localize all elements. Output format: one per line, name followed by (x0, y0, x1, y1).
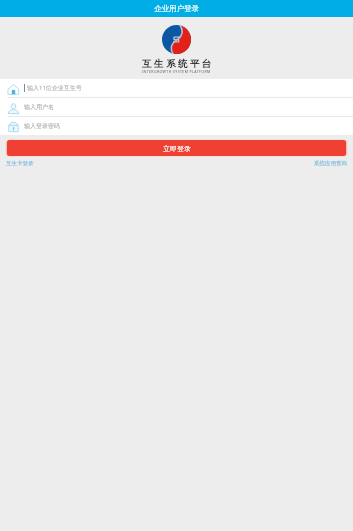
button[interactable]: 输入用户名 (0, 98, 353, 116)
staticText: 立即登录 (163, 144, 191, 153)
staticText: 互生卡登录 (6, 160, 34, 167)
staticText: 系统应用查询 (314, 160, 347, 167)
button[interactable]: 系统应用查询 (314, 160, 347, 167)
staticText: 输入11位企业互生号 (27, 84, 82, 92)
staticText: 输入登录密码 (24, 122, 60, 130)
staticText: 输入用户名 (24, 103, 54, 111)
button[interactable]: 输入11位企业互生号 (0, 79, 353, 97)
staticText: INTERGROWTH SYSTEM PLATFORM (142, 69, 211, 74)
staticText: 企业用户登录 (154, 4, 199, 13)
button[interactable]: 立即登录 (7, 140, 346, 156)
button[interactable]: 输入登录密码 (0, 117, 353, 135)
staticText: 互 生 系 统 平 台 (142, 57, 212, 69)
button[interactable]: 互生卡登录 (6, 160, 34, 167)
